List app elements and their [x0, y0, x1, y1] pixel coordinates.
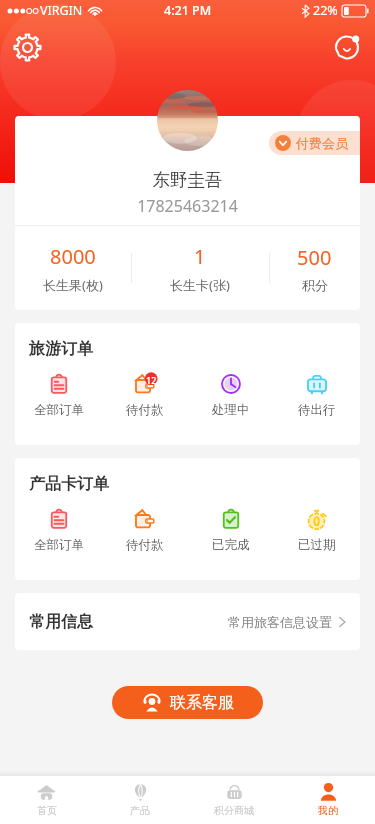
- staticText: 12: [146, 374, 157, 386]
- staticText: 全部订单: [34, 402, 84, 418]
- button[interactable]: 首页: [0, 783, 93, 817]
- staticText: 长生卡(张): [170, 276, 230, 294]
- button[interactable]: 我的: [281, 783, 375, 817]
- staticText: 8000: [50, 243, 96, 270]
- button[interactable]: Settings: [13, 33, 42, 62]
- button[interactable]: 500: [269, 244, 360, 293]
- staticText: 付费会员: [296, 135, 348, 151]
- button[interactable]: 常用信息: [15, 593, 360, 650]
- button[interactable]: 处理中: [188, 373, 274, 418]
- staticText: 东野圭吾: [15, 169, 360, 191]
- button[interactable]: 待付款: [102, 508, 188, 553]
- staticText: VIRGIN: [40, 2, 83, 19]
- staticText: 17825463214: [15, 195, 360, 217]
- staticText: 产品: [130, 804, 150, 817]
- staticText: 待出行: [298, 402, 336, 418]
- staticText: 待付款: [126, 402, 164, 418]
- staticText: 联系客服: [170, 693, 234, 713]
- button[interactable]: 付费会员: [269, 131, 360, 155]
- button[interactable]: Messages: [333, 33, 362, 62]
- staticText: 常用旅客信息设置: [228, 614, 332, 630]
- button[interactable]: 已过期: [274, 508, 360, 553]
- staticText: 全部订单: [34, 537, 84, 553]
- button[interactable]: 产品: [93, 783, 187, 817]
- staticText: 已过期: [298, 537, 336, 553]
- staticText: 产品卡订单: [29, 474, 109, 494]
- staticText: 22%: [313, 2, 338, 19]
- button[interactable]: 联系客服: [112, 686, 263, 719]
- staticText: 500: [297, 244, 332, 271]
- staticText: 首页: [37, 804, 57, 817]
- staticText: 旅游订单: [29, 339, 93, 359]
- staticText: 待付款: [126, 537, 164, 553]
- staticText: 已完成: [212, 537, 250, 553]
- staticText: 4:21 PM: [164, 2, 212, 19]
- button[interactable]: 积分商城: [187, 783, 281, 817]
- staticText: 我的: [318, 804, 338, 817]
- button[interactable]: 待出行: [274, 373, 360, 418]
- button[interactable]: 8000: [15, 243, 131, 294]
- button[interactable]: 全部订单: [15, 373, 102, 418]
- staticText: 积分: [302, 277, 328, 293]
- staticText: 长生果(枚): [43, 276, 103, 294]
- button[interactable]: 已完成: [188, 508, 274, 553]
- staticText: 常用信息: [29, 612, 93, 632]
- button[interactable]: 全部订单: [15, 508, 102, 553]
- staticText: 1: [194, 243, 206, 270]
- button[interactable]: 12: [102, 373, 188, 418]
- staticText: 处理中: [212, 402, 250, 418]
- button[interactable]: 1: [131, 243, 269, 294]
- staticText: 积分商城: [214, 804, 254, 817]
